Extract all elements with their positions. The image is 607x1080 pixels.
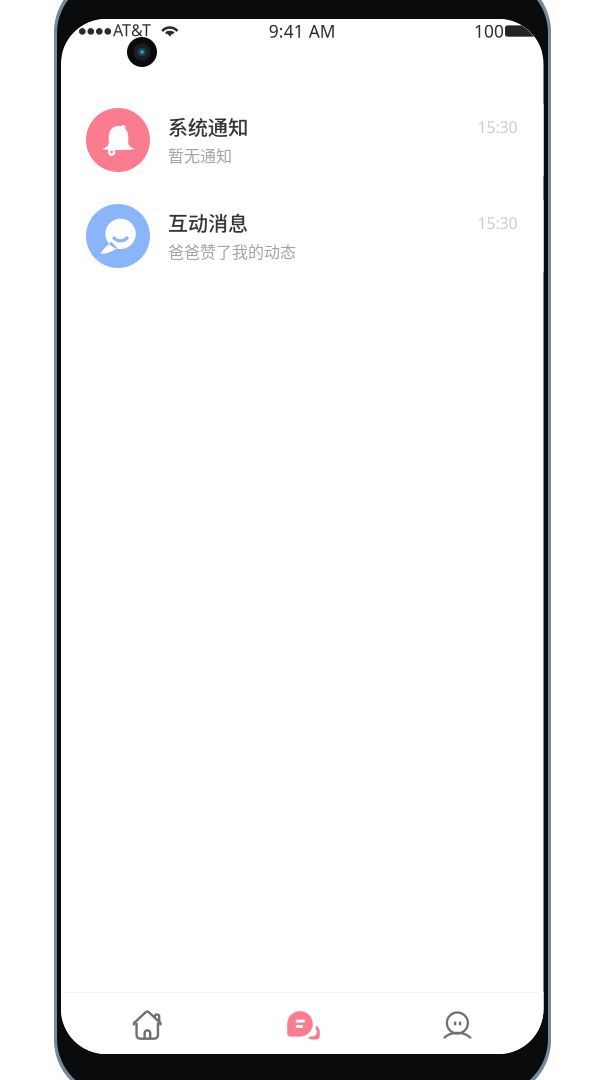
staticText: 15:30 [477, 116, 517, 138]
staticText: 暂无通知 [168, 143, 232, 167]
staticText: 爸爸赞了我的动态 [168, 239, 296, 263]
button[interactable]: 互动消息 [61, 200, 543, 272]
staticText: AT&T [113, 19, 151, 41]
staticText: 系统通知 [168, 111, 248, 140]
button[interactable]: Profile [380, 993, 535, 1054]
staticText: 100 [474, 19, 504, 42]
button[interactable]: 系统通知 [61, 104, 543, 176]
staticText: 互动消息 [168, 207, 248, 236]
staticText: 9:41 AM [269, 19, 336, 42]
button[interactable]: Home [70, 993, 225, 1054]
button[interactable]: Messages [225, 993, 380, 1054]
staticText: 15:30 [477, 212, 517, 234]
